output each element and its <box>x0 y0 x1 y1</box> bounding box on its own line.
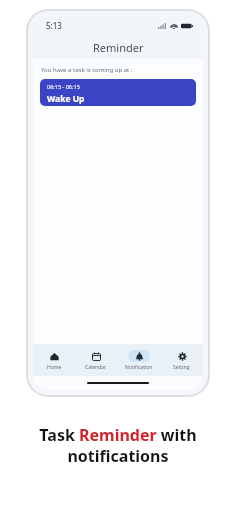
button[interactable]: Home <box>33 344 75 376</box>
other: Notification <box>135 352 144 361</box>
staticText: 5:13 <box>46 20 62 31</box>
staticText: Notification <box>125 364 153 371</box>
other: Setting <box>178 352 187 361</box>
button[interactable]: Calendar <box>75 344 117 376</box>
staticText: Task Reminder with notifications <box>18 424 218 467</box>
staticText: Setting <box>173 364 190 371</box>
staticText: 06:15 - 06:15 <box>47 83 80 90</box>
other: Calendar <box>92 352 101 361</box>
button[interactable]: Notification <box>117 344 160 376</box>
staticText: Wake Up <box>47 93 85 105</box>
button[interactable]: Setting <box>160 344 203 376</box>
staticText: Home <box>47 364 62 371</box>
button[interactable]: 06:15 - 06:15 <box>40 79 196 106</box>
other: Home <box>50 352 59 361</box>
staticText: Calendar <box>85 364 107 371</box>
staticText: Reminder <box>93 40 144 55</box>
staticText: You have a task is coming up at : <box>41 66 133 74</box>
